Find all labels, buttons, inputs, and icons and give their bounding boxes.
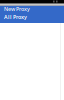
staticText: New Proxy: [4, 5, 30, 13]
staticText: All Proxy: [4, 13, 27, 21]
